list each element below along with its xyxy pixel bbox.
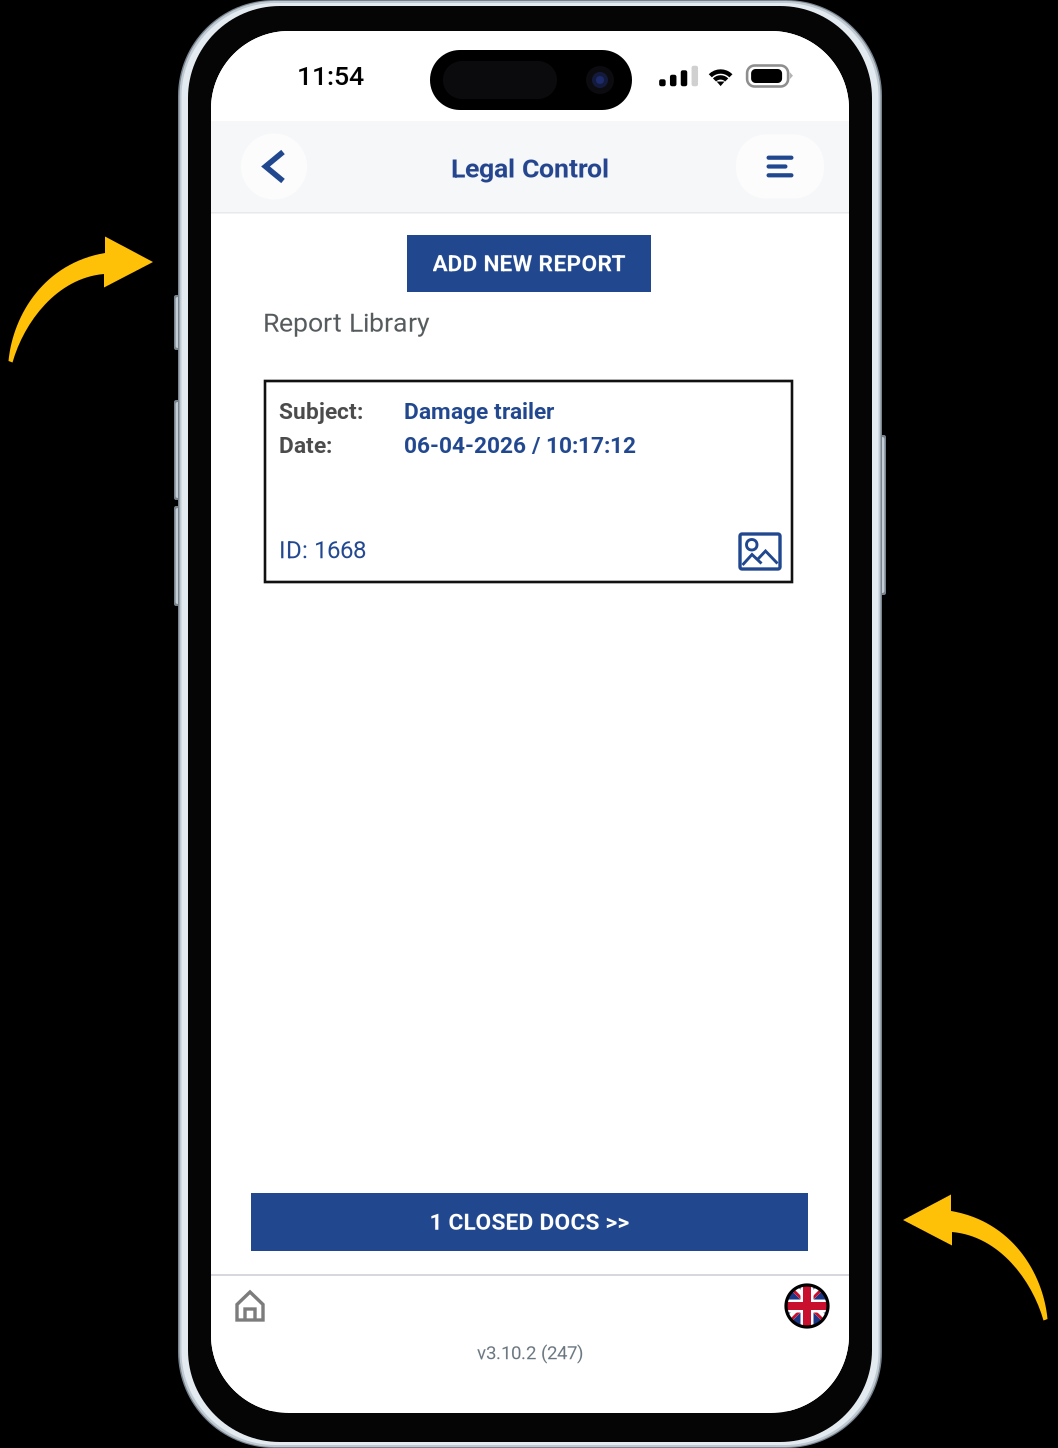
staticText: Legal Control	[451, 153, 609, 184]
staticText: ID: 1668	[279, 536, 366, 564]
button[interactable]: Menu	[736, 134, 824, 198]
button[interactable]: Language	[786, 1285, 828, 1327]
button[interactable]: Back	[241, 133, 307, 199]
staticText: 1 CLOSED DOCS >>	[429, 1209, 629, 1235]
staticText: v3.10.2 (247)	[477, 1342, 583, 1364]
button[interactable]: 1 CLOSED DOCS >>	[251, 1193, 808, 1251]
staticText: 06-04-2026 / 10:17:12	[404, 432, 636, 459]
staticText: 11:54	[297, 60, 364, 92]
staticText: Date:	[279, 432, 332, 459]
button[interactable]: ADD NEW REPORT	[407, 235, 651, 292]
staticText: Damage trailer	[404, 398, 554, 425]
button[interactable]: Subject:	[265, 381, 792, 582]
button[interactable]: Home	[235, 1289, 265, 1323]
staticText: Report Library	[263, 307, 430, 338]
staticText: Subject:	[279, 398, 363, 425]
staticText: ADD NEW REPORT	[432, 250, 625, 277]
